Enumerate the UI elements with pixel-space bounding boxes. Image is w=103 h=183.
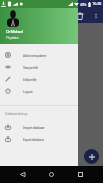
button[interactable]: Import database (0, 121, 78, 133)
staticText: Import database (23, 125, 45, 130)
button[interactable]: Edit profile (0, 73, 78, 85)
button[interactable]: Back (16, 168, 29, 181)
staticText: View profile (23, 65, 38, 70)
staticText: Database backup (5, 111, 28, 116)
button[interactable]: Logout (0, 85, 78, 97)
button[interactable]: More options (90, 10, 102, 22)
staticText: 40% (80, 2, 87, 7)
button[interactable]: Delete (73, 9, 86, 22)
button[interactable]: Home (45, 168, 58, 181)
button[interactable]: Add a new patient (0, 49, 78, 61)
staticText: Physician (6, 35, 19, 40)
button[interactable]: View profile (0, 61, 78, 73)
button[interactable]: Recent apps (74, 168, 87, 181)
button[interactable]: Export database (0, 133, 78, 145)
staticText: Export database (23, 137, 44, 142)
button[interactable]: Add (84, 149, 99, 164)
staticText: Edit profile (23, 77, 37, 82)
staticText: Dr Michael (6, 29, 23, 34)
staticText: 16:38 (92, 1, 102, 7)
staticText: Logout (23, 89, 33, 94)
staticText: Add a new patient (23, 53, 46, 58)
